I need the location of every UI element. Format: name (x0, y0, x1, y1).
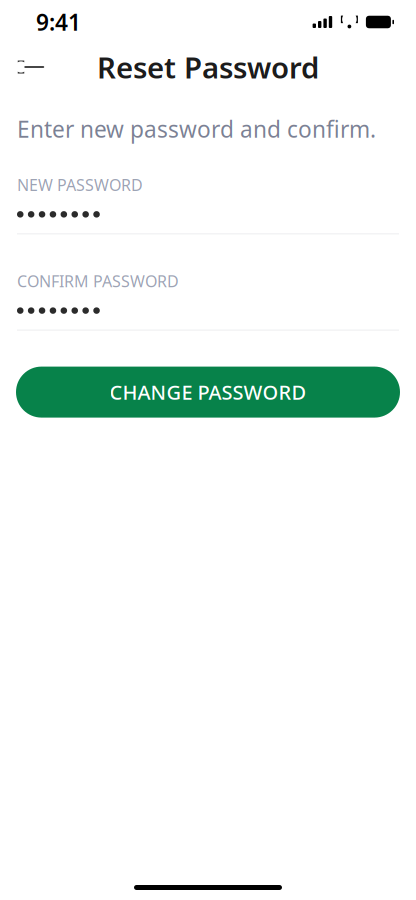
button[interactable]: Back (9, 45, 53, 89)
staticText: NEW PASSWORD (17, 174, 143, 195)
staticText: CHANGE PASSWORD (109, 379, 306, 405)
button[interactable]: CHANGE PASSWORD (0, 367, 416, 418)
staticText: Reset Password (97, 47, 319, 86)
staticText: CONFIRM PASSWORD (17, 270, 179, 291)
staticText: Enter new password and confirm. (17, 114, 376, 144)
staticText: 9:41 (36, 7, 81, 37)
